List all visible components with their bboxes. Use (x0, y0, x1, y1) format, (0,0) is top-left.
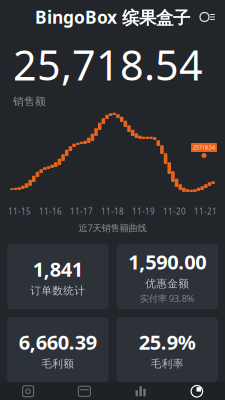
staticText: 毛利额 (41, 357, 74, 370)
staticText: 11-15 (8, 206, 31, 217)
staticText: 销售额 (13, 95, 46, 108)
staticText: 毛利率 (151, 357, 184, 370)
button[interactable]: 1,590.00 (116, 244, 218, 309)
staticText: 1,841 (33, 256, 83, 282)
button[interactable]: 6,660.39 (7, 317, 108, 382)
staticText: 6,660.39 (19, 329, 97, 355)
button[interactable]: 盒子 (56, 382, 112, 400)
button[interactable]: 搜索 (194, 6, 221, 27)
staticText: 11-19 (132, 206, 155, 217)
staticText: BingoBox 缤果盒子 (35, 5, 190, 28)
staticText: 1,590.00 (128, 248, 206, 275)
staticText: 实付率 93.8% (140, 292, 195, 304)
button[interactable]: 排行 (112, 382, 169, 400)
button[interactable]: 25.9% (116, 317, 218, 382)
button[interactable]: 1,841 (7, 244, 108, 309)
staticText: 11-17 (70, 206, 93, 217)
staticText: 订单数统计 (30, 284, 85, 297)
staticText: 11-20 (163, 206, 186, 217)
staticText: 优惠金额 (145, 277, 189, 290)
button[interactable]: 统计 (169, 382, 225, 400)
staticText: 25.9% (139, 329, 196, 355)
staticText: 11-18 (101, 206, 124, 217)
staticText: 11-21 (194, 206, 217, 217)
button[interactable]: 概览 (0, 382, 56, 400)
staticText: 11-16 (39, 206, 62, 217)
staticText: 25,718.54 (13, 37, 203, 92)
staticText: 25718.54 (193, 144, 215, 151)
staticText: 近7天销售额曲线 (78, 222, 146, 234)
